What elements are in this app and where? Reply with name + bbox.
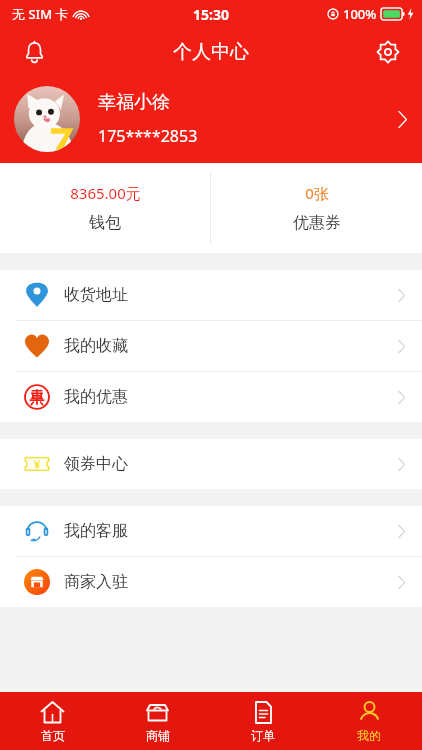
staticText: 无 SIM 卡 — [12, 5, 69, 23]
staticText: 我的优惠 — [64, 387, 128, 407]
button[interactable]: 商家入驻 — [0, 557, 422, 607]
button[interactable]: 订单 — [210, 692, 316, 750]
staticText: 商铺 — [146, 728, 170, 743]
staticText: 钱包 — [89, 213, 121, 233]
button[interactable]: 首页 — [0, 692, 105, 750]
staticText: 商家入驻 — [64, 572, 128, 592]
staticText: 我的客服 — [64, 521, 128, 541]
button[interactable]: 我的优惠 — [0, 372, 422, 422]
staticText: 我的 — [357, 728, 381, 743]
staticText: 幸福小徐 — [98, 91, 170, 114]
staticText: 订单 — [251, 728, 275, 743]
staticText: 100% — [343, 5, 377, 23]
staticText: 175****2853 — [98, 125, 198, 147]
button[interactable]: Notifications — [14, 32, 54, 72]
staticText: 收货地址 — [64, 285, 128, 305]
staticText: 我的收藏 — [64, 336, 128, 356]
staticText: 0张 — [305, 183, 329, 203]
staticText: 领券中心 — [64, 454, 128, 474]
staticText: 首页 — [41, 728, 65, 743]
staticText: 15:30 — [193, 5, 229, 24]
button[interactable]: 领券中心 — [0, 439, 422, 489]
button[interactable]: 我的客服 — [0, 506, 422, 556]
button[interactable]: 我的收藏 — [0, 321, 422, 371]
button[interactable]: 收货地址 — [0, 270, 422, 320]
button[interactable]: Settings — [368, 32, 408, 72]
button[interactable]: 商铺 — [105, 692, 210, 750]
staticText: 8365.00元 — [70, 183, 141, 203]
button[interactable]: 8365.00元 — [0, 163, 210, 253]
staticText: 个人中心 — [173, 40, 249, 64]
button[interactable]: 我的 — [316, 692, 422, 750]
button[interactable]: 幸福小徐 — [0, 75, 422, 163]
button[interactable]: 0张 — [211, 163, 422, 253]
staticText: 优惠券 — [293, 213, 341, 233]
